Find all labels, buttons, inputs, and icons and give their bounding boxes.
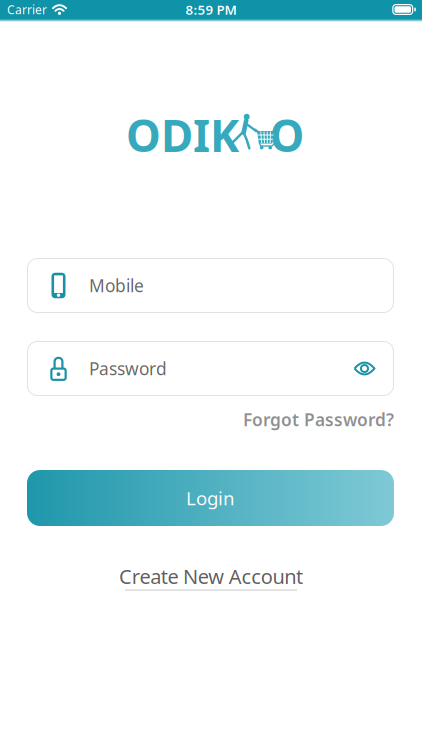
staticText: Carrier — [7, 1, 47, 17]
staticText: Password — [89, 357, 167, 380]
button[interactable]: Forgot Password? — [243, 408, 394, 431]
button[interactable]: Login — [27, 470, 394, 526]
staticText: 8:59 PM — [185, 1, 236, 18]
staticText: O — [269, 106, 304, 164]
staticText: Create New Account — [119, 563, 303, 590]
staticText: Login — [186, 486, 235, 510]
staticText: ODIK — [126, 106, 239, 164]
staticText: Mobile — [89, 274, 144, 297]
button[interactable]: Show password — [343, 360, 394, 376]
button[interactable]: Create New Account — [119, 563, 303, 591]
staticText: Forgot Password? — [243, 408, 394, 431]
